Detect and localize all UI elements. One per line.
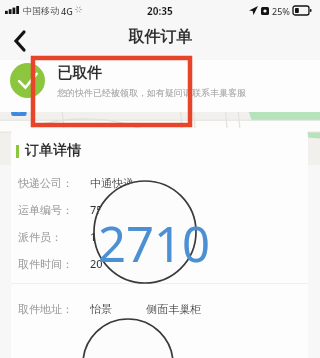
staticText: 20:35	[147, 4, 173, 18]
staticText: 派件员：	[18, 230, 62, 244]
staticText: 25%	[272, 5, 290, 17]
staticText: 订单详情	[25, 142, 81, 160]
button[interactable]: 已取件	[0, 60, 320, 112]
staticText: 中国移动	[23, 5, 59, 16]
staticText: 取件地址：	[18, 302, 73, 316]
staticText: 怡景 侧面丰巢柜	[90, 301, 202, 316]
staticText: 4G	[61, 5, 73, 17]
staticText: 已取件	[57, 64, 102, 83]
staticText: 取件时间：	[18, 257, 73, 271]
staticText: 您的快件已经被领取，如有疑问请联系丰巢客服	[57, 87, 246, 98]
staticText: 2710	[98, 210, 211, 277]
staticText: 75	[90, 202, 137, 217]
staticText: 取件订单	[128, 27, 192, 47]
staticText: 1	[90, 229, 97, 244]
staticText: 运单编号：	[18, 203, 73, 217]
button[interactable]: 返回	[0, 21, 40, 60]
staticText: 20 :55	[90, 256, 153, 271]
staticText: 中通快递	[90, 176, 134, 190]
staticText: 快递公司：	[18, 176, 73, 190]
